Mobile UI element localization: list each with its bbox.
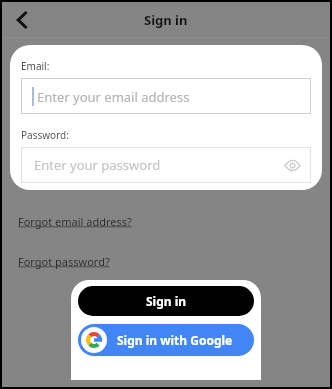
button[interactable]: Show password [282, 155, 302, 175]
staticText: Sign in with Google [117, 332, 233, 348]
button[interactable]: Enter your email address [21, 78, 311, 114]
button[interactable]: Forgot email address? [14, 212, 136, 231]
button[interactable]: Sign in with Google [78, 324, 254, 356]
button[interactable]: Sign in [78, 286, 254, 316]
staticText: Enter your password [34, 156, 161, 174]
button[interactable]: Forgot password? [14, 252, 114, 271]
button[interactable]: Enter your password [21, 147, 311, 183]
staticText: Forgot password? [18, 254, 110, 269]
button[interactable]: Back [6, 3, 40, 37]
staticText: Password: [21, 128, 69, 142]
staticText: Email: [21, 59, 50, 73]
staticText: Sign in [146, 293, 187, 309]
staticText: Sign in [144, 11, 188, 29]
staticText: Enter your email address [37, 88, 190, 106]
staticText: Forgot email address? [18, 214, 132, 229]
